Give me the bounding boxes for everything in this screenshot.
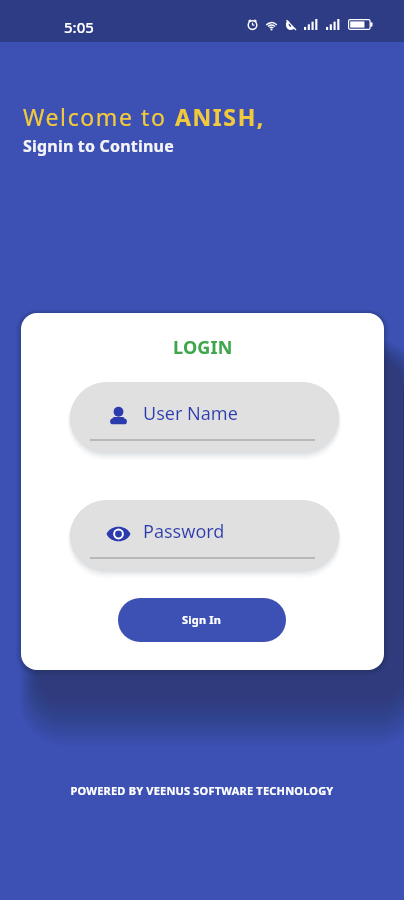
staticText: User Name bbox=[143, 401, 238, 426]
staticText: 5:05 bbox=[64, 17, 94, 37]
staticText: Sign In bbox=[182, 612, 222, 627]
staticText: Password bbox=[143, 519, 225, 544]
button[interactable]: Password bbox=[70, 497, 353, 583]
staticText: Signin to Continue bbox=[23, 135, 174, 157]
staticText: ANISH, bbox=[175, 101, 265, 132]
staticText: Welcome to bbox=[23, 101, 175, 132]
button[interactable]: User Name bbox=[70, 379, 353, 465]
button[interactable]: Sign In bbox=[118, 598, 286, 642]
staticText: LOGIN bbox=[173, 335, 233, 360]
staticText: POWERED BY VEENUS SOFTWARE TECHNOLOGY bbox=[0, 783, 404, 798]
